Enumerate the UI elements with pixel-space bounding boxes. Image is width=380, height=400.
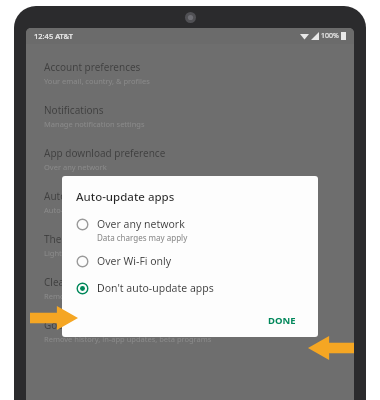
staticText: Don't auto-update apps bbox=[97, 281, 214, 295]
staticText: Theme bbox=[44, 232, 77, 246]
button[interactable]: Account preferences bbox=[26, 54, 354, 97]
staticText: App download preference bbox=[44, 146, 166, 160]
button[interactable]: Notifications bbox=[26, 97, 354, 140]
button[interactable]: Auto-update apps bbox=[26, 183, 354, 226]
staticText: Over any network bbox=[97, 217, 185, 231]
staticText: Over any network bbox=[44, 162, 107, 172]
staticText: 100% bbox=[321, 31, 339, 41]
button[interactable]: Don't auto-update apps bbox=[76, 280, 306, 296]
other: Highlight selected option bbox=[30, 306, 78, 330]
staticText: Auto-update apps bbox=[44, 189, 129, 203]
staticText: Remove history, in-app updates, beta pro… bbox=[44, 334, 212, 344]
staticText: 12:45 AT&T bbox=[34, 31, 73, 41]
staticText: Clear local search history bbox=[44, 275, 162, 289]
button[interactable]: App download preference bbox=[26, 140, 354, 183]
staticText: Auto-update apps over Wi-Fi only bbox=[44, 205, 161, 215]
staticText: Over Wi-Fi only bbox=[97, 254, 172, 268]
button[interactable]: DONE bbox=[262, 310, 302, 331]
staticText: Google Play preferences bbox=[44, 318, 159, 332]
staticText: Remove searches you've done on Play bbox=[44, 291, 178, 301]
staticText: Notifications bbox=[44, 103, 104, 117]
staticText: Data charges may apply bbox=[97, 232, 188, 243]
staticText: Manage notification settings bbox=[44, 119, 145, 129]
button[interactable]: Over Wi-Fi only bbox=[76, 253, 306, 269]
button[interactable]: Theme bbox=[26, 226, 354, 269]
button[interactable]: Clear local search history bbox=[26, 269, 354, 312]
button[interactable]: Google Play preferences bbox=[26, 312, 354, 355]
staticText: Auto-update apps bbox=[76, 189, 175, 205]
staticText: Account preferences bbox=[44, 60, 141, 74]
staticText: Your email, country, & profiles bbox=[44, 76, 150, 86]
other: Highlight Done button bbox=[308, 336, 354, 360]
staticText: Light bbox=[44, 248, 62, 258]
button[interactable]: Over any network bbox=[76, 216, 306, 244]
staticText: DONE bbox=[268, 314, 296, 327]
